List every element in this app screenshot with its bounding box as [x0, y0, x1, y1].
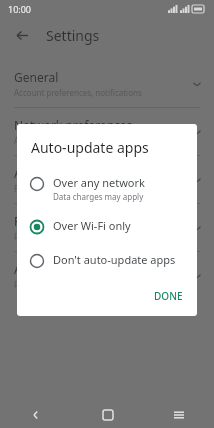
staticText: Fingerprint, purchase authentication [14, 183, 152, 194]
staticText: Play Store, build version, certification [14, 279, 153, 290]
button[interactable]: Back [12, 25, 32, 45]
button[interactable]: Family [0, 204, 214, 252]
staticText: Network preferences [14, 117, 133, 133]
button[interactable]: Over any network [17, 169, 197, 208]
button[interactable]: Don't auto-update apps [17, 246, 197, 274]
button[interactable]: Authentication [0, 156, 214, 204]
button[interactable]: Back [0, 402, 72, 428]
staticText: Settings [46, 26, 100, 45]
staticText: Authentication [14, 165, 98, 181]
staticText: Auto-update apps, auto-play videos [14, 135, 148, 146]
button[interactable]: DONE [140, 284, 197, 308]
button[interactable]: Network preferences [0, 108, 214, 156]
button[interactable]: About [0, 252, 214, 299]
staticText: Data charges may apply [53, 191, 144, 202]
staticText: Over Wi-Fi only [53, 218, 131, 233]
staticText: Parental control, parent guide [14, 231, 127, 242]
staticText: DONE [154, 289, 183, 303]
button[interactable]: Home [72, 402, 143, 428]
button[interactable]: Recent apps [143, 402, 214, 428]
button[interactable]: General [0, 60, 214, 108]
staticText: About [14, 261, 49, 277]
staticText: Family [14, 213, 51, 229]
staticText: General [14, 69, 59, 85]
staticText: Account preferences, notifications [14, 87, 142, 98]
staticText: Don't auto-update apps [53, 252, 176, 267]
staticText: Over any network [53, 175, 145, 190]
staticText: 10:00 [8, 3, 32, 15]
staticText: Auto-update apps [31, 138, 149, 157]
button[interactable]: Over Wi-Fi only [17, 212, 197, 240]
